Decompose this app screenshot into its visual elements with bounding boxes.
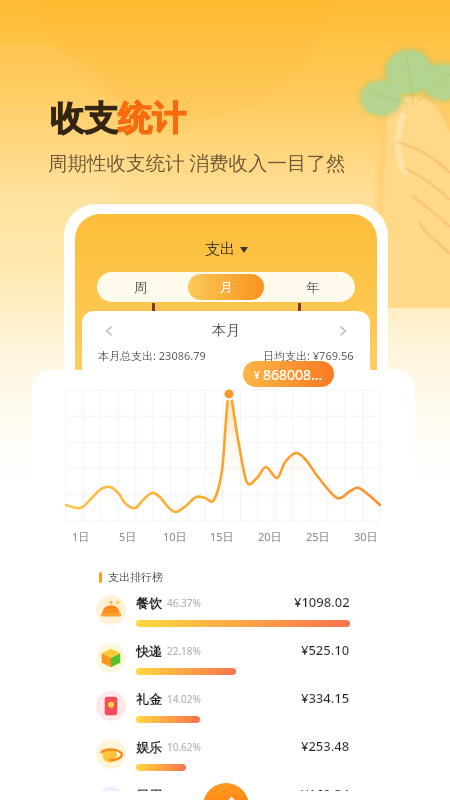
staticText: 25日 <box>306 529 330 544</box>
staticText: 餐饮 <box>136 595 162 611</box>
staticText: 46.37% <box>167 596 201 610</box>
staticText: 20日 <box>258 529 282 544</box>
staticText: ¥525.10 <box>301 641 350 659</box>
staticText: 14.02% <box>167 692 201 706</box>
button[interactable]: 年 <box>269 272 355 302</box>
staticText: ¥ <box>254 368 263 382</box>
staticText: 礼金 <box>136 691 162 707</box>
staticText: ¥253.48 <box>301 737 350 755</box>
staticText: 5日 <box>119 529 137 544</box>
staticText: ¥334.15 <box>301 689 350 707</box>
staticText: 本月 <box>212 322 240 340</box>
staticText: 日均支出: ¥769.56 <box>263 348 354 363</box>
staticText: 周 <box>134 279 147 295</box>
staticText: 10.62% <box>167 740 201 754</box>
staticText: 868008... <box>263 365 323 384</box>
staticText: 周期性收支统计 消费收入一目了然 <box>48 149 346 176</box>
button[interactable]: 日用 <box>96 778 350 800</box>
staticText: 10日 <box>163 529 187 544</box>
staticText: 统计 <box>118 97 186 140</box>
staticText: 本月总支出: 23086.79 <box>98 348 206 363</box>
button[interactable]: Previous month <box>102 324 116 338</box>
staticText: 年 <box>306 279 319 295</box>
staticText: 支出 <box>205 240 235 259</box>
button[interactable]: Add record <box>203 783 249 800</box>
staticText: 快递 <box>136 643 162 659</box>
staticText: ¥162.34 <box>301 785 350 800</box>
button[interactable]: 月 <box>188 274 264 300</box>
staticText: 15日 <box>210 529 234 544</box>
button[interactable]: 快递 <box>96 634 350 682</box>
staticText: 1日 <box>72 529 90 544</box>
button[interactable]: 周 <box>97 272 183 302</box>
staticText: 30日 <box>354 529 378 544</box>
button[interactable]: 礼金 <box>96 682 350 730</box>
staticText: 月 <box>220 279 233 295</box>
staticText: 日用 <box>136 787 162 800</box>
button[interactable]: 娱乐 <box>96 730 350 778</box>
staticText: 支出排行榜 <box>108 570 163 584</box>
button[interactable]: 餐饮 <box>96 586 350 634</box>
staticText: 娱乐 <box>136 739 162 755</box>
staticText: 收支 <box>50 97 118 140</box>
staticText: ¥1098.02 <box>294 593 350 611</box>
staticText: 22.18% <box>167 644 201 658</box>
button[interactable]: ¥ <box>243 361 334 387</box>
button[interactable]: Next month <box>336 324 350 338</box>
button[interactable]: 支出 <box>75 240 377 259</box>
